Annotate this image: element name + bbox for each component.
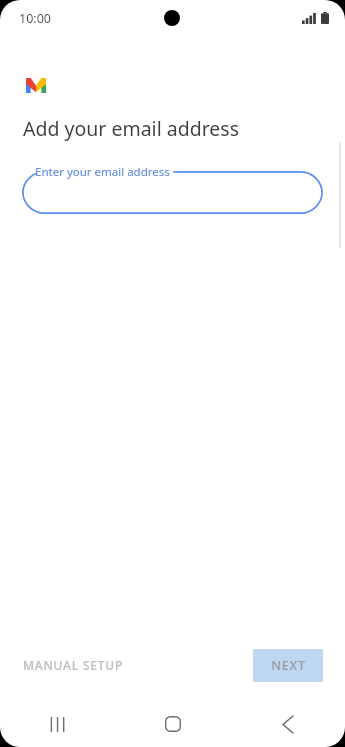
- staticText: MANUAL SETUP: [23, 657, 124, 673]
- button[interactable]: Enter your email address: [22, 158, 323, 214]
- staticText: Enter your email address: [35, 164, 170, 180]
- button[interactable]: Home: [115, 701, 230, 747]
- button[interactable]: NEXT: [253, 649, 323, 682]
- staticText: Add your email address: [23, 115, 240, 142]
- staticText: NEXT: [271, 657, 306, 674]
- button[interactable]: Recent apps: [0, 701, 115, 747]
- button[interactable]: MANUAL SETUP: [14, 651, 133, 679]
- staticText: 10:00: [19, 10, 51, 27]
- button[interactable]: Back: [230, 701, 345, 747]
